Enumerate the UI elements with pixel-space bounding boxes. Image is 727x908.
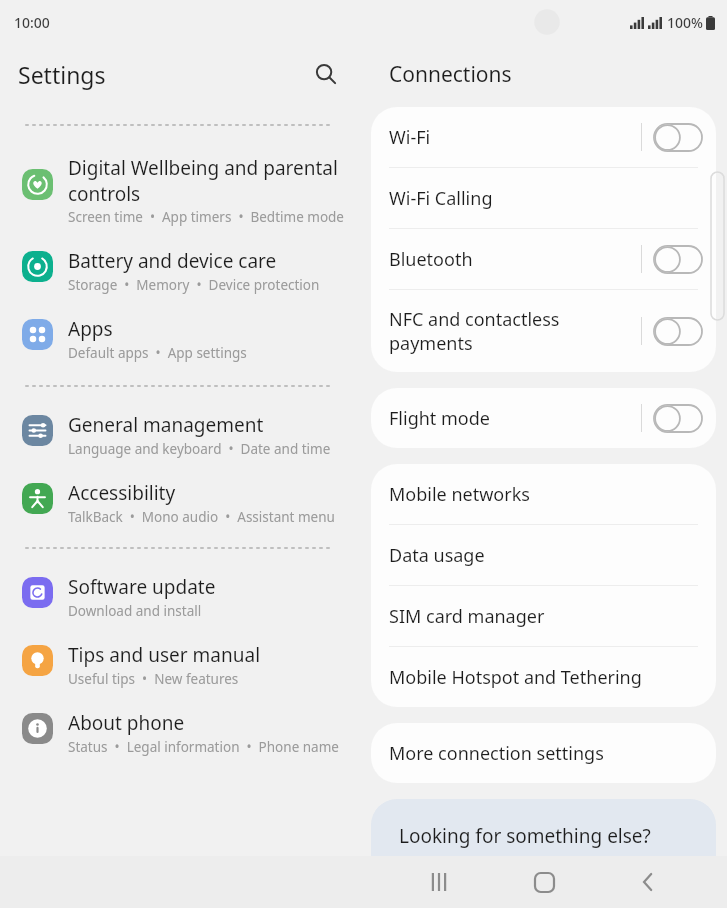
button[interactable]: Search: [306, 54, 346, 94]
button[interactable]: Wi-Fi Calling: [371, 168, 716, 229]
staticText: Flight mode: [389, 406, 641, 431]
button[interactable]: Digital Wellbeing and parental controls: [0, 144, 360, 237]
button[interactable]: Mobile networks: [371, 464, 716, 525]
staticText: Settings: [18, 59, 106, 90]
button[interactable]: Back: [622, 856, 674, 908]
button[interactable]: Data usage: [371, 525, 716, 586]
staticText: Data usage: [389, 543, 485, 568]
staticText: Looking for something else?: [399, 823, 651, 849]
staticText: Accessibility: [68, 480, 176, 506]
button[interactable]: SIM card manager: [371, 586, 716, 647]
button[interactable]: Battery and device care: [0, 237, 360, 305]
staticText: Connections: [389, 60, 512, 89]
button[interactable]: Tips and user manual: [0, 631, 360, 699]
staticText: Useful tips • New features: [68, 670, 239, 688]
button[interactable]: Apps: [0, 305, 360, 373]
staticText: TalkBack • Mono audio • Assistant menu: [68, 508, 335, 526]
button[interactable]: Flight mode: [371, 388, 716, 448]
button[interactable]: Looking for something else?: [371, 799, 716, 908]
staticText: Bluetooth: [389, 247, 641, 272]
button[interactable]: Recents: [413, 856, 465, 908]
staticText: Battery and device care: [68, 248, 277, 274]
button[interactable]: Toggle: [654, 124, 702, 151]
staticText: Wi-Fi Calling: [389, 186, 493, 211]
button[interactable]: Software update: [0, 563, 360, 631]
staticText: Mobile Hotspot and Tethering: [389, 665, 642, 690]
button[interactable]: Toggle: [654, 246, 702, 273]
button[interactable]: Accessibility: [0, 469, 360, 537]
staticText: NFC and contactless payments: [389, 307, 641, 355]
button[interactable]: Mobile Hotspot and Tethering: [371, 647, 716, 707]
staticText: Language and keyboard • Date and time: [68, 440, 331, 458]
button[interactable]: Wi-Fi: [371, 107, 716, 168]
staticText: Screen time • App timers • Bedtime mode: [68, 208, 344, 226]
button[interactable]: Toggle: [654, 318, 702, 345]
staticText: Tips and user manual: [68, 642, 261, 668]
staticText: Digital Wellbeing and parental controls: [68, 155, 338, 206]
staticText: Status • Legal information • Phone name: [68, 738, 339, 756]
staticText: Download and install: [68, 602, 202, 620]
button[interactable]: General management: [0, 401, 360, 469]
staticText: 100%: [667, 13, 703, 32]
staticText: 10:00: [14, 13, 50, 32]
button[interactable]: Toggle: [654, 405, 702, 432]
button[interactable]: Home: [518, 856, 570, 908]
staticText: About phone: [68, 710, 185, 736]
staticText: Mobile networks: [389, 482, 530, 507]
staticText: General management: [68, 412, 264, 438]
staticText: Wi-Fi: [389, 125, 641, 150]
staticText: More connection settings: [389, 741, 604, 766]
button[interactable]: Bluetooth: [371, 229, 716, 290]
staticText: Apps: [68, 316, 113, 342]
button[interactable]: About phone: [0, 699, 360, 767]
staticText: Default apps • App settings: [68, 344, 247, 362]
staticText: SIM card manager: [389, 604, 545, 629]
button[interactable]: NFC and contactless payments: [371, 290, 716, 372]
staticText: Software update: [68, 574, 216, 600]
staticText: Storage • Memory • Device protection: [68, 276, 320, 294]
button[interactable]: More connection settings: [371, 723, 716, 783]
